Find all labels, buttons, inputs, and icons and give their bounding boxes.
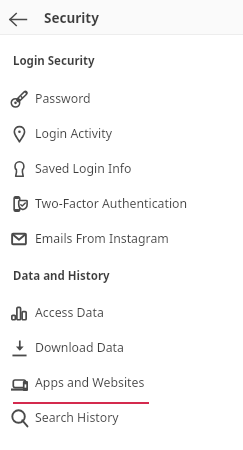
staticText: Apps and Websites — [35, 374, 145, 391]
button[interactable]: Back — [0, 0, 35, 35]
staticText: Emails From Instagram — [35, 230, 169, 247]
staticText: Two-Factor Authentication — [35, 195, 188, 212]
button[interactable]: Access Data — [0, 295, 243, 330]
staticText: Access Data — [35, 304, 104, 321]
staticText: Search History — [35, 409, 119, 426]
button[interactable]: Two-Factor Authentication — [0, 186, 243, 221]
staticText: Login Security — [13, 53, 95, 69]
button[interactable]: Saved Login Info — [0, 151, 243, 186]
staticText: Download Data — [35, 339, 124, 356]
staticText: Password — [35, 90, 91, 107]
button[interactable]: Emails From Instagram — [0, 221, 243, 256]
button[interactable]: Download Data — [0, 330, 243, 365]
staticText: Login Activity — [35, 125, 112, 142]
staticText: Saved Login Info — [35, 160, 132, 177]
button[interactable]: Password — [0, 81, 243, 116]
button[interactable]: Login Activity — [0, 116, 243, 151]
button[interactable]: Search History — [0, 400, 243, 435]
staticText: Data and History — [13, 268, 110, 284]
button[interactable]: Apps and Websites — [0, 365, 243, 400]
staticText: Security — [44, 9, 99, 27]
